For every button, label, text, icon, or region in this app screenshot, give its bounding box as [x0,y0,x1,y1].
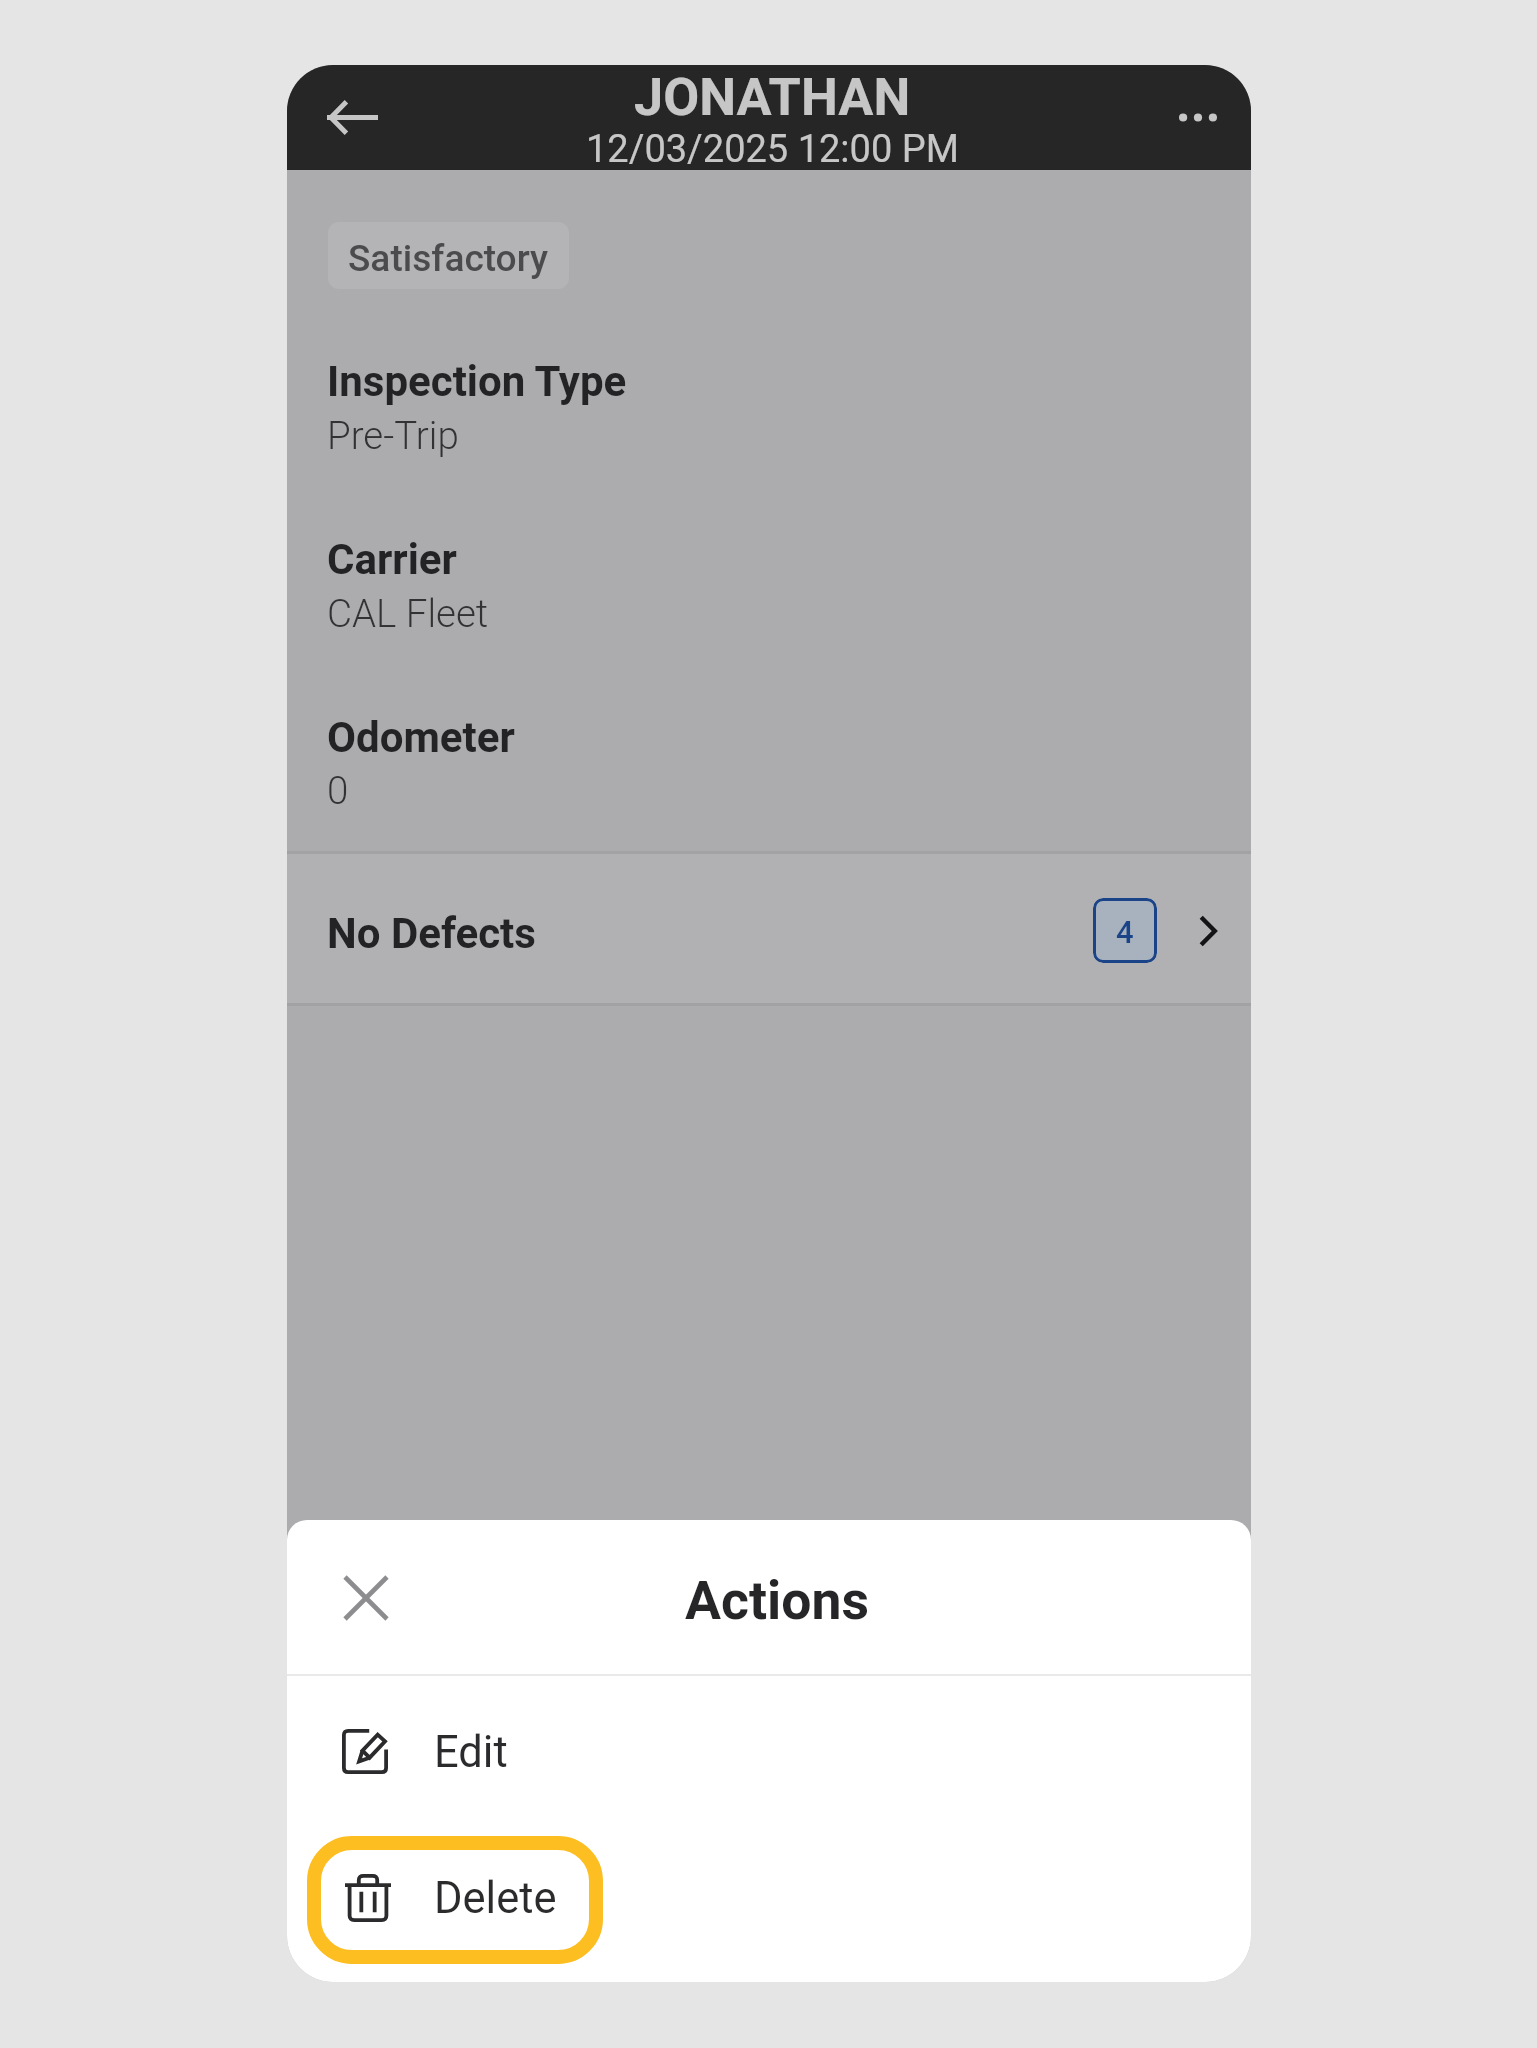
button[interactable]: Edit [287,1702,1251,1830]
staticText: 4 [1116,912,1134,951]
button[interactable]: No Defects [287,854,1251,1003]
staticText: Actions [685,1566,869,1633]
staticText: Odometer [327,710,515,763]
button[interactable]: Delete [307,1836,603,1964]
staticText: No Defects [327,906,536,959]
staticText: Satisfactory [348,234,549,280]
staticText: Inspection Type [327,354,627,407]
staticText: 0 [327,766,349,814]
button[interactable]: More options [1160,79,1236,155]
staticText: CAL Fleet [327,589,489,637]
button[interactable]: Back [314,79,390,155]
staticText: Pre-Trip [327,411,459,459]
staticText: Edit [434,1724,508,1778]
staticText: Delete [434,1870,557,1924]
staticText: Carrier [327,532,457,585]
staticText: 12/03/2025 12:00 PM [586,124,959,172]
button[interactable]: Close [333,1565,399,1631]
staticText: JONATHAN [634,65,911,128]
